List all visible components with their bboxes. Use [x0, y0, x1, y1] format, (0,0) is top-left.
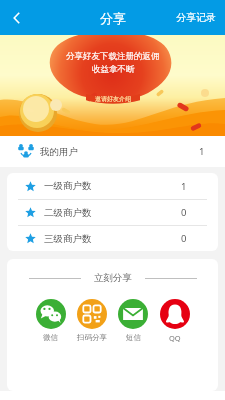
button[interactable]: 分享记录	[167, 3, 225, 32]
button[interactable]: 二级商户数	[7, 200, 218, 225]
button[interactable]: 三级商户数	[7, 226, 218, 251]
staticText: 微信	[43, 333, 58, 342]
staticText: 0	[181, 206, 187, 219]
staticText: 一级商户数	[44, 180, 92, 192]
button[interactable]: 扫码分享	[71, 299, 112, 342]
staticText: 立刻分享	[94, 272, 132, 284]
staticText: 邀请好友介绍	[95, 95, 131, 103]
staticText: 分享	[100, 10, 126, 26]
staticText: QQ	[169, 333, 181, 343]
button[interactable]: 我的用户	[0, 136, 225, 167]
staticText: 0	[181, 232, 187, 245]
button[interactable]: 短信	[112, 299, 154, 342]
staticText: 二级商户数	[44, 207, 92, 219]
button[interactable]: Back	[0, 1, 33, 34]
staticText: 收益拿不断	[92, 64, 135, 75]
staticText: 三级商户数	[44, 233, 92, 245]
staticText: 分享好友下载注册的返佣	[66, 51, 160, 62]
staticText: 我的用户	[40, 146, 78, 158]
staticText: 短信	[126, 333, 141, 342]
staticText: 1	[199, 145, 205, 158]
button[interactable]: 一级商户数	[7, 173, 218, 199]
button[interactable]: QQ	[154, 299, 196, 343]
button[interactable]: 微信	[30, 299, 71, 342]
staticText: 分享记录	[176, 11, 216, 24]
staticText: 1	[181, 180, 187, 193]
staticText: 扫码分享	[77, 333, 107, 342]
